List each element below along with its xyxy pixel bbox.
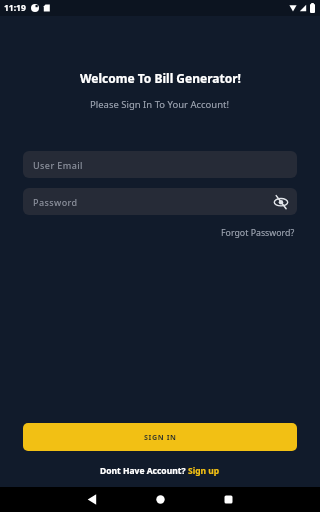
button[interactable]: SIGN IN [23,423,297,451]
staticText: Password [33,196,78,208]
staticText: 11:19 [4,2,26,14]
button[interactable]: User Email [23,151,297,178]
staticText: Dont Have Account? [100,465,188,477]
staticText: SIGN IN [144,432,177,442]
staticText: Please Sign In To Your Account! [90,98,230,111]
staticText: Sign up [188,465,220,477]
button[interactable] [80,487,105,512]
staticText: Welcome To Bill Generator! [80,70,241,86]
staticText: User Email [33,159,83,171]
button[interactable] [148,487,173,512]
button[interactable]: Password [23,188,297,215]
button[interactable]: Dont Have Account? [100,465,220,477]
button[interactable]: Forgot Password? [221,227,295,239]
button[interactable] [216,487,241,512]
